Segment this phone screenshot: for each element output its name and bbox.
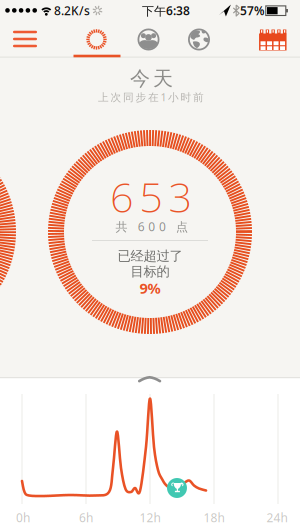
- button[interactable]: [137, 28, 159, 50]
- staticText: 今天: [130, 66, 173, 91]
- staticText: 共 600 点: [115, 218, 188, 234]
- button[interactable]: [13, 30, 37, 48]
- staticText: 上次同步在1小时前: [98, 90, 204, 104]
- button[interactable]: [259, 29, 287, 50]
- staticText: 已经超过了: [117, 248, 182, 264]
- staticText: 9%: [139, 278, 160, 298]
- staticText: 18h: [203, 509, 224, 525]
- button[interactable]: [73, 20, 120, 58]
- staticText: 8.2K/s: [54, 3, 90, 19]
- staticText: 57%: [240, 3, 265, 19]
- staticText: 12h: [139, 509, 160, 525]
- staticText: 目标的: [130, 263, 169, 280]
- staticText: 24h: [266, 509, 287, 525]
- button[interactable]: [188, 28, 210, 50]
- button[interactable]: [138, 376, 162, 385]
- staticText: 653: [110, 169, 193, 224]
- staticText: 6h: [79, 509, 93, 525]
- button[interactable]: [167, 478, 187, 498]
- staticText: 下午6:38: [142, 3, 190, 19]
- staticText: 0h: [16, 509, 30, 525]
